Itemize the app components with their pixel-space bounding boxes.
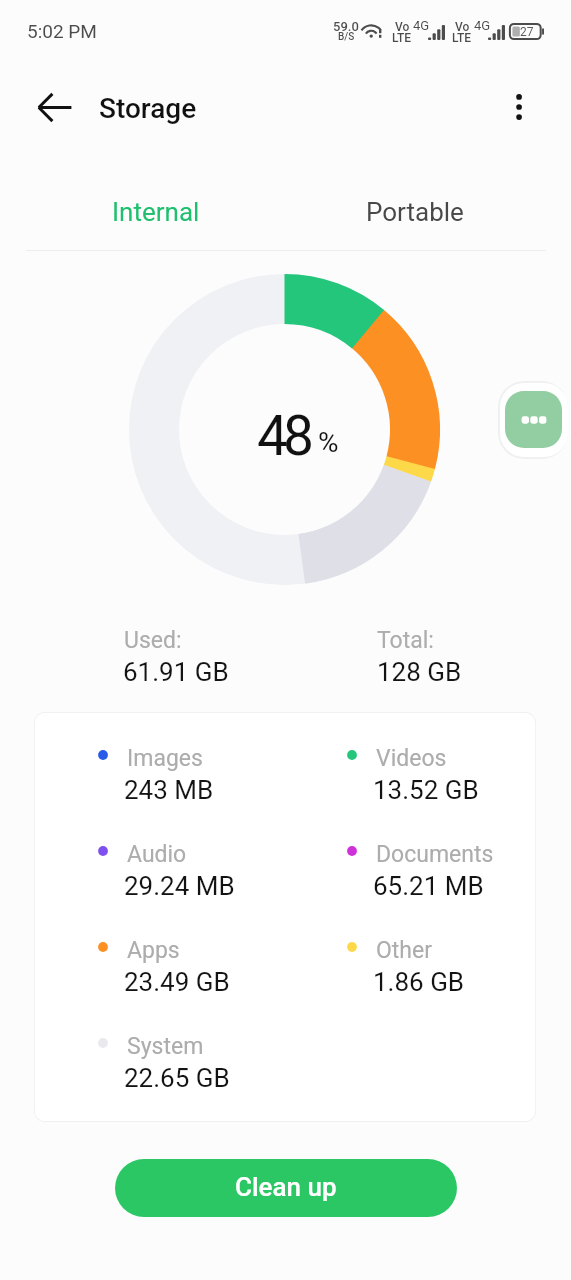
- staticText: Portable: [366, 197, 464, 227]
- staticText: Used:: [124, 627, 182, 654]
- staticText: System: [127, 1033, 204, 1060]
- staticText: B/S: [338, 31, 355, 43]
- staticText: 128 GB: [377, 657, 462, 687]
- button[interactable]: Clean up: [115, 1159, 457, 1217]
- staticText: Audio: [127, 841, 187, 868]
- staticText: Vo: [395, 20, 410, 34]
- staticText: 4G: [413, 18, 430, 33]
- staticText: 13.52 GB: [373, 775, 479, 805]
- staticText: Clean up: [235, 1172, 337, 1202]
- staticText: Images: [127, 745, 203, 772]
- staticText: LTE: [452, 31, 472, 45]
- staticText: 48: [257, 404, 309, 468]
- staticText: Storage: [99, 92, 197, 125]
- staticText: 23.49 GB: [124, 967, 230, 997]
- staticText: 29.24 MB: [124, 871, 235, 901]
- staticText: Documents: [376, 841, 494, 868]
- button[interactable]: Back: [30, 83, 78, 131]
- button[interactable]: More: [505, 391, 562, 448]
- staticText: Other: [376, 937, 433, 964]
- staticText: 243 MB: [124, 775, 214, 805]
- staticText: 59.0: [333, 19, 359, 34]
- staticText: Apps: [127, 937, 180, 964]
- button[interactable]: Internal: [26, 164, 285, 261]
- staticText: 1.86 GB: [373, 967, 465, 997]
- staticText: 61.91 GB: [123, 657, 229, 687]
- staticText: 22.65 GB: [124, 1063, 230, 1093]
- button[interactable]: Portable: [285, 164, 545, 261]
- staticText: 5:02 PM: [27, 20, 97, 42]
- staticText: Videos: [376, 745, 447, 772]
- staticText: Internal: [112, 197, 200, 227]
- button[interactable]: More options: [495, 85, 539, 129]
- staticText: 27: [520, 25, 534, 39]
- staticText: LTE: [392, 31, 412, 45]
- staticText: Vo: [455, 20, 470, 34]
- staticText: 65.21 MB: [373, 871, 484, 901]
- staticText: %: [318, 426, 339, 459]
- staticText: 4G: [474, 18, 491, 33]
- staticText: Total:: [377, 627, 434, 654]
